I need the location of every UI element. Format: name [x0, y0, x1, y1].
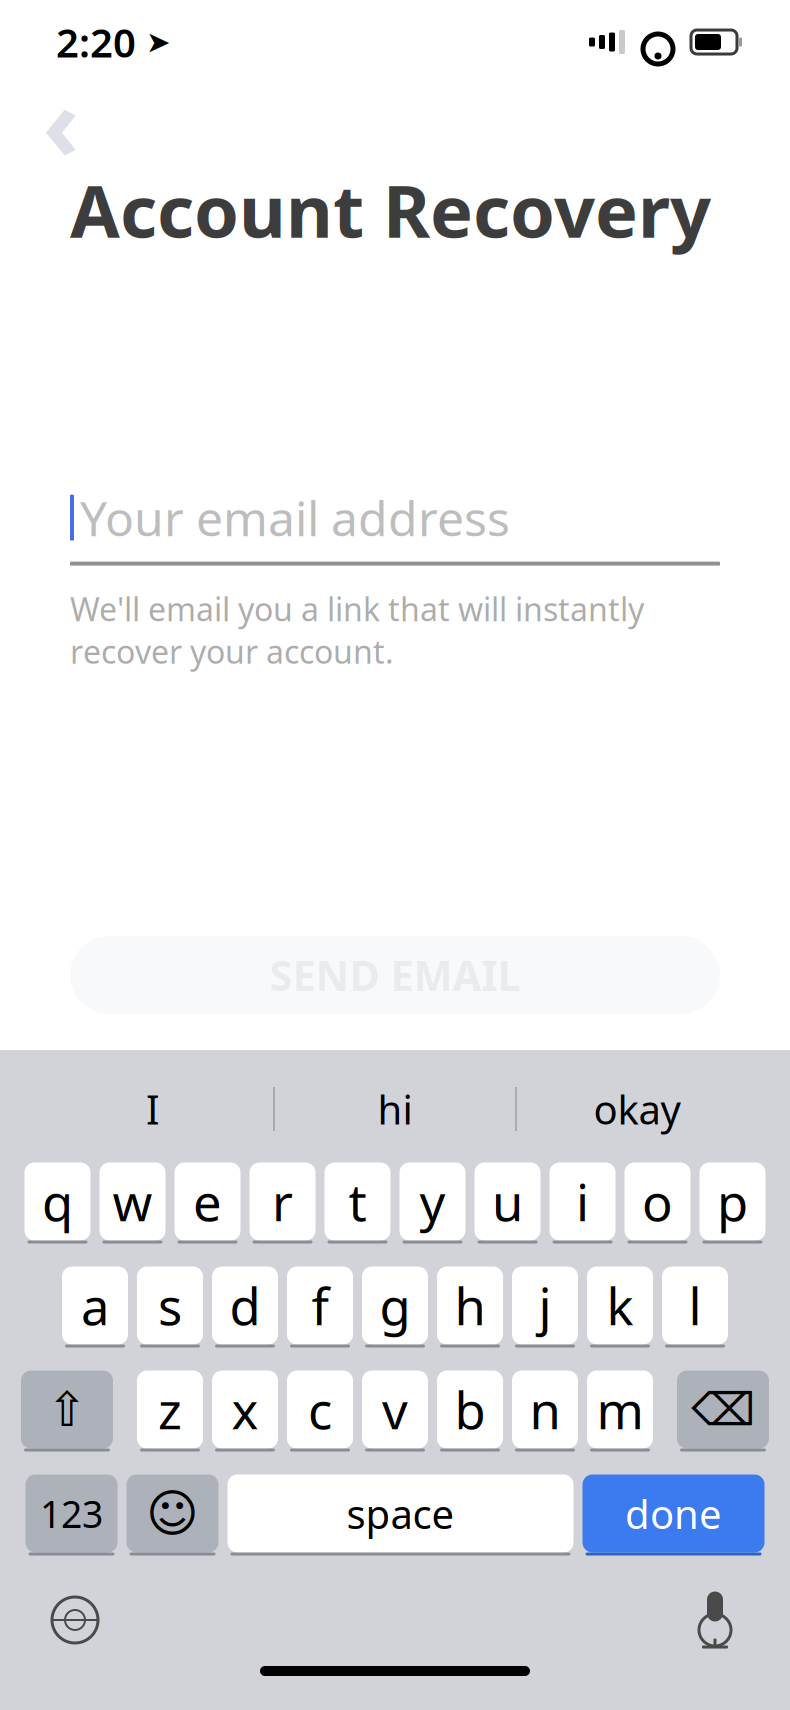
button[interactable]: Shift	[21, 1370, 113, 1451]
staticText: z	[158, 1376, 182, 1443]
button[interactable]: m	[587, 1370, 653, 1451]
button[interactable]: hi	[275, 1066, 515, 1152]
button[interactable]: k	[587, 1266, 653, 1347]
staticText: s	[158, 1272, 182, 1339]
button[interactable]: I	[33, 1066, 273, 1152]
staticText: h	[454, 1272, 485, 1339]
staticText: SEND EMAIL	[269, 948, 520, 1002]
staticText: q	[42, 1168, 73, 1235]
staticText: a	[81, 1272, 109, 1339]
button[interactable]: e	[174, 1162, 240, 1243]
button[interactable]: space	[227, 1474, 573, 1555]
staticText: o	[642, 1168, 673, 1235]
button[interactable]: i	[549, 1162, 615, 1243]
staticText: okay	[593, 1082, 680, 1135]
button[interactable]: SEND EMAIL	[0, 936, 790, 1014]
staticText: ⇧	[47, 1382, 87, 1437]
staticText: m	[596, 1376, 643, 1443]
staticText: y	[419, 1168, 445, 1235]
staticText: b	[454, 1376, 485, 1443]
button[interactable]: g	[362, 1266, 428, 1347]
staticText: u	[492, 1168, 523, 1235]
button[interactable]: n	[512, 1370, 578, 1451]
staticText: done	[625, 1487, 722, 1540]
button[interactable]: z	[137, 1370, 203, 1451]
staticText: hi	[377, 1082, 412, 1135]
staticText: ‹	[42, 54, 79, 188]
button[interactable]: c	[287, 1370, 353, 1451]
button[interactable]: t	[324, 1162, 390, 1243]
staticText: e	[193, 1168, 222, 1235]
button[interactable]: u	[474, 1162, 540, 1243]
staticText: l	[688, 1272, 701, 1339]
button[interactable]: r	[249, 1162, 315, 1243]
button[interactable]: okay	[517, 1066, 757, 1152]
staticText: i	[576, 1168, 589, 1235]
button[interactable]: s	[137, 1266, 203, 1347]
staticText: We'll email you a link that will instant…	[70, 588, 644, 673]
button[interactable]: y	[399, 1162, 465, 1243]
button[interactable]: b	[437, 1370, 503, 1451]
staticText: space	[346, 1487, 454, 1540]
staticText: n	[529, 1376, 560, 1443]
staticText: f	[311, 1272, 328, 1339]
button[interactable]: Numbers	[25, 1474, 117, 1555]
staticText: p	[717, 1168, 748, 1235]
button[interactable]: j	[512, 1266, 578, 1347]
button[interactable]: h	[437, 1266, 503, 1347]
button[interactable]: q	[24, 1162, 90, 1243]
staticText: 2:20	[56, 15, 136, 68]
staticText: r	[272, 1168, 293, 1235]
button[interactable]: d	[212, 1266, 278, 1347]
button[interactable]: Dictation	[685, 1590, 745, 1650]
staticText: ☺	[146, 1485, 199, 1542]
staticText: ➤	[146, 25, 171, 59]
staticText: g	[379, 1272, 410, 1339]
button[interactable]: p	[699, 1162, 765, 1243]
staticText: v	[382, 1376, 408, 1443]
staticText: Account Recovery	[70, 162, 711, 258]
button[interactable]: done	[582, 1474, 764, 1555]
button[interactable]: Next keyboard	[45, 1590, 105, 1650]
staticText: j	[538, 1272, 551, 1339]
staticText: Your email address	[80, 486, 510, 549]
button[interactable]: a	[62, 1266, 128, 1347]
button[interactable]: o	[624, 1162, 690, 1243]
button[interactable]: Delete	[677, 1370, 769, 1451]
button[interactable]: Emoji	[126, 1474, 218, 1555]
staticText: d	[229, 1272, 260, 1339]
staticText: k	[606, 1272, 633, 1339]
button[interactable]: f	[287, 1266, 353, 1347]
staticText: 123	[40, 1489, 103, 1538]
staticText: I	[146, 1082, 160, 1135]
button[interactable]: l	[662, 1266, 728, 1347]
button[interactable]: w	[99, 1162, 165, 1243]
button[interactable]: Back	[24, 84, 98, 158]
staticText: x	[231, 1376, 258, 1443]
button[interactable]: v	[362, 1370, 428, 1451]
staticText: t	[348, 1168, 366, 1235]
staticText: w	[112, 1168, 152, 1235]
staticText: ⌫	[691, 1384, 755, 1435]
button[interactable]: x	[212, 1370, 278, 1451]
staticText: c	[308, 1376, 332, 1443]
